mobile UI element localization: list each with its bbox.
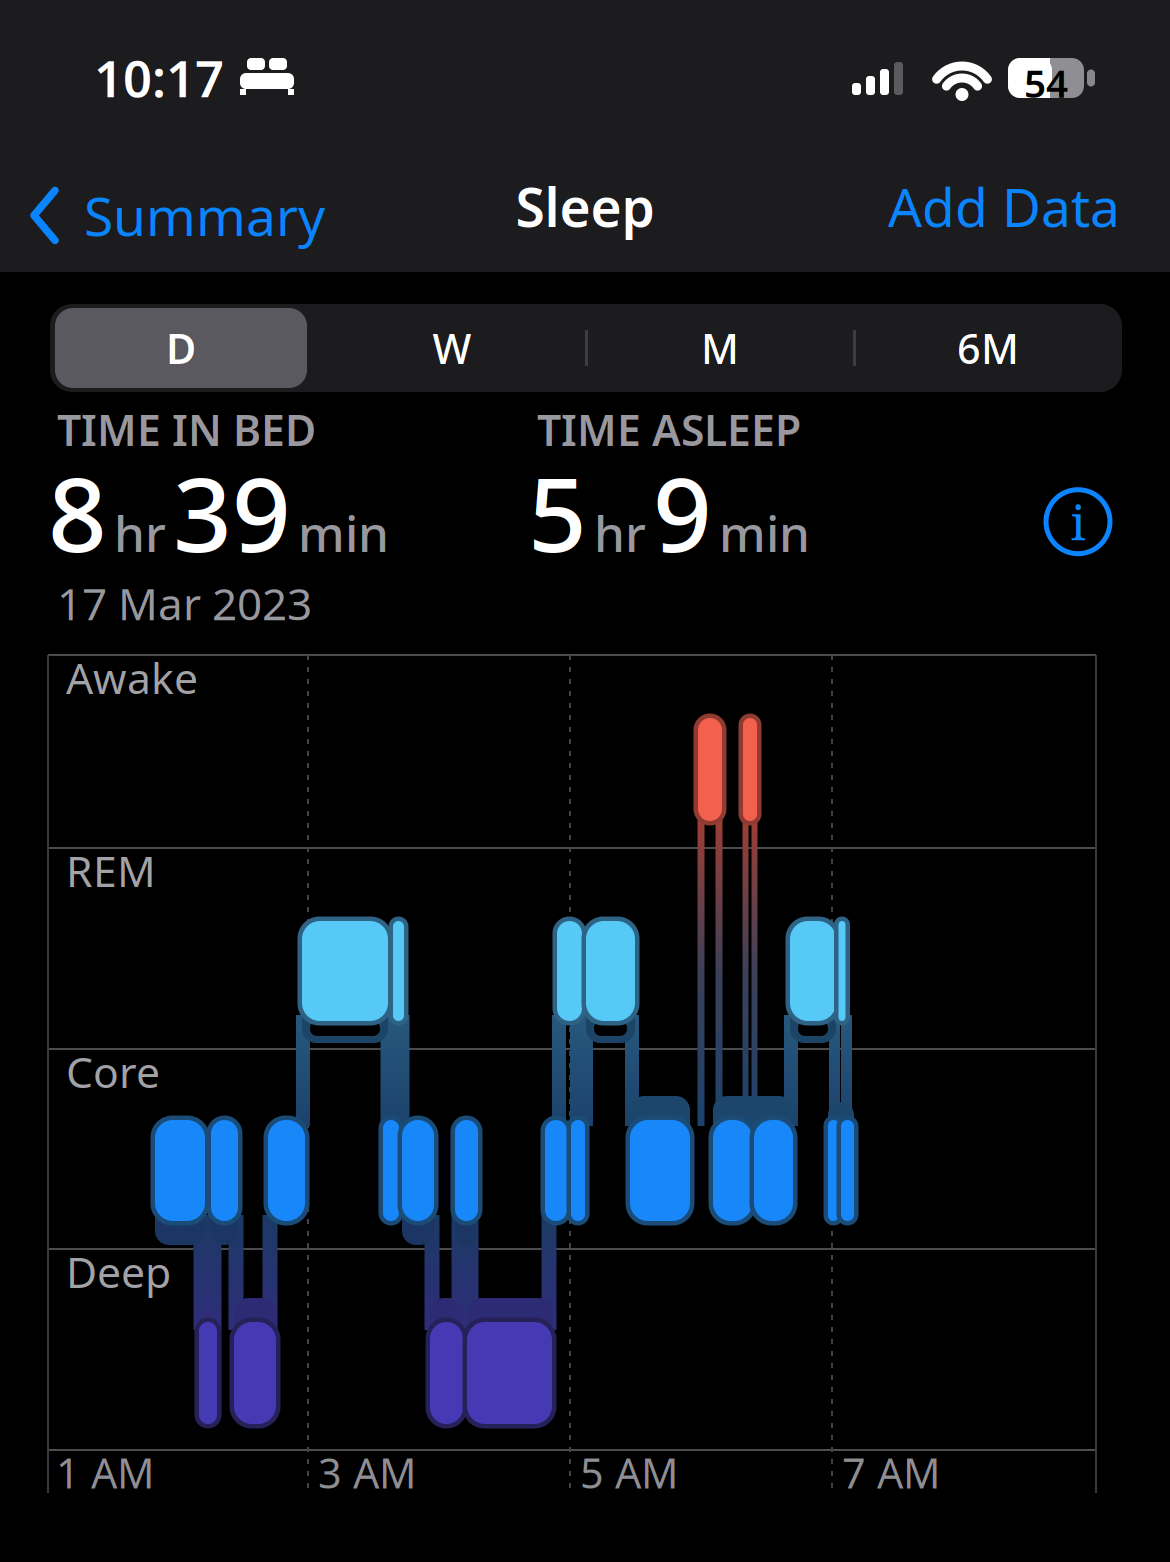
staticText: 10:17 [94, 44, 224, 111]
staticText: Sleep [515, 171, 654, 242]
staticText: 54 [1024, 57, 1068, 108]
staticText: min [719, 500, 810, 566]
staticText: 5 AM [580, 1445, 678, 1500]
staticText: W [432, 321, 471, 375]
staticText: i [1070, 489, 1085, 554]
staticText: 7 AM [842, 1445, 940, 1500]
button[interactable]: i [1046, 489, 1110, 554]
staticText: 39 [173, 444, 291, 580]
staticText: 5 [528, 444, 587, 580]
staticText: REM [66, 842, 156, 899]
staticText: 1 AM [56, 1445, 154, 1500]
staticText: hr [594, 500, 646, 566]
staticText: hr [114, 500, 166, 566]
staticText: D [166, 321, 196, 375]
button[interactable]: D [55, 308, 307, 388]
staticText: TIME IN BED [57, 401, 316, 458]
button[interactable]: W [352, 308, 552, 388]
staticText: M [701, 321, 739, 375]
staticText: 9 [653, 444, 712, 580]
staticText: 8 [48, 444, 107, 580]
staticText: 6M [957, 321, 1019, 375]
staticText: Deep [66, 1243, 171, 1300]
staticText: min [298, 500, 389, 566]
staticText: Core [66, 1043, 160, 1100]
staticText: 3 AM [318, 1445, 416, 1500]
staticText: Add Data [888, 171, 1120, 242]
button[interactable]: 6M [888, 308, 1088, 388]
button[interactable]: Summary [31, 180, 325, 251]
staticText: 17 Mar 2023 [57, 574, 312, 632]
staticText: Summary [84, 180, 325, 251]
staticText: TIME ASLEEP [537, 401, 801, 458]
button[interactable]: Add Data [888, 171, 1120, 242]
staticText: Awake [66, 649, 198, 706]
button[interactable]: M [620, 308, 820, 388]
